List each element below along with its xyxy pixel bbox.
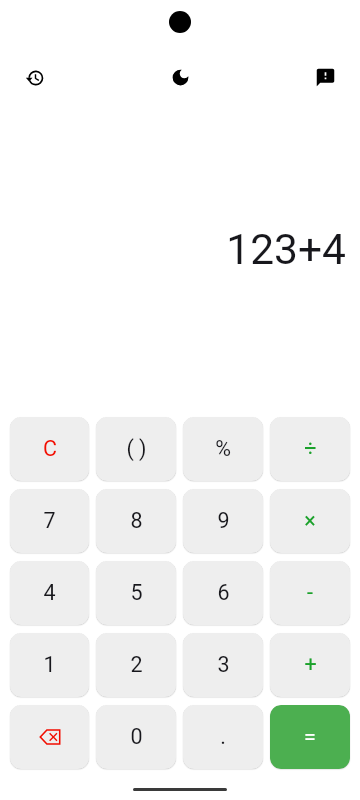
staticText: 6 <box>217 580 230 605</box>
button[interactable]: Dark mode <box>156 53 204 101</box>
staticText: ÷ <box>304 436 317 461</box>
button[interactable]: ( ) <box>96 417 176 481</box>
staticText: 2 <box>130 652 143 677</box>
button[interactable]: ÷ <box>270 417 350 481</box>
staticText: ( ) <box>126 436 147 461</box>
button[interactable]: 5 <box>96 561 176 625</box>
staticText: % <box>215 436 231 461</box>
button[interactable]: 2 <box>96 633 176 697</box>
staticText: + <box>304 652 317 677</box>
staticText: 0 <box>130 724 143 749</box>
staticText: 9 <box>217 508 230 533</box>
button[interactable]: - <box>270 561 350 625</box>
button[interactable]: C <box>10 417 89 481</box>
staticText: 1 <box>43 652 56 677</box>
button[interactable]: 0 <box>96 705 176 769</box>
staticText: 8 <box>130 508 143 533</box>
staticText: × <box>304 508 316 533</box>
button[interactable]: 7 <box>10 489 89 553</box>
staticText: C <box>43 436 57 461</box>
button[interactable]: × <box>270 489 350 553</box>
button[interactable]: . <box>183 705 263 769</box>
button[interactable]: History <box>11 54 59 102</box>
staticText: . <box>220 724 226 749</box>
staticText: 123+4 <box>226 225 346 275</box>
button[interactable]: Send feedback <box>301 53 349 101</box>
button[interactable]: 9 <box>183 489 263 553</box>
button[interactable]: 8 <box>96 489 176 553</box>
button[interactable]: = <box>270 705 350 769</box>
button[interactable]: % <box>183 417 263 481</box>
button[interactable]: 1 <box>10 633 89 697</box>
button[interactable]: 6 <box>183 561 263 625</box>
staticText: = <box>304 724 316 749</box>
staticText: 5 <box>130 580 143 605</box>
staticText: - <box>307 580 313 605</box>
button[interactable]: 4 <box>10 561 89 625</box>
staticText: 3 <box>217 652 230 677</box>
button[interactable]: 3 <box>183 633 263 697</box>
staticText: 7 <box>43 508 56 533</box>
button[interactable]: Backspace <box>10 705 89 769</box>
staticText: 4 <box>43 580 56 605</box>
button[interactable]: + <box>270 633 350 697</box>
